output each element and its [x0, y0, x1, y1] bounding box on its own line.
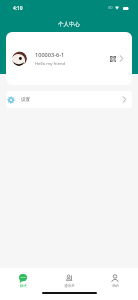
button[interactable]: 通讯录	[46, 268, 92, 288]
staticText: 4:10	[13, 5, 23, 12]
staticText: Hello my friend	[35, 61, 66, 67]
staticText: 个人中心	[58, 21, 80, 28]
button[interactable]: 100003-6-1	[6, 32, 132, 85]
staticText: 设置	[21, 97, 123, 103]
button[interactable]: 设置	[6, 91, 132, 108]
button[interactable]: 我的	[92, 268, 138, 288]
staticText: 通讯录	[64, 284, 75, 288]
staticText: 我的	[112, 284, 119, 288]
staticText: HD	[108, 6, 113, 10]
button[interactable]: QR code	[110, 56, 116, 62]
staticText: 100003-6-1	[35, 51, 65, 59]
button[interactable]: 聊天	[0, 268, 46, 288]
staticText: 聊天	[20, 284, 27, 288]
